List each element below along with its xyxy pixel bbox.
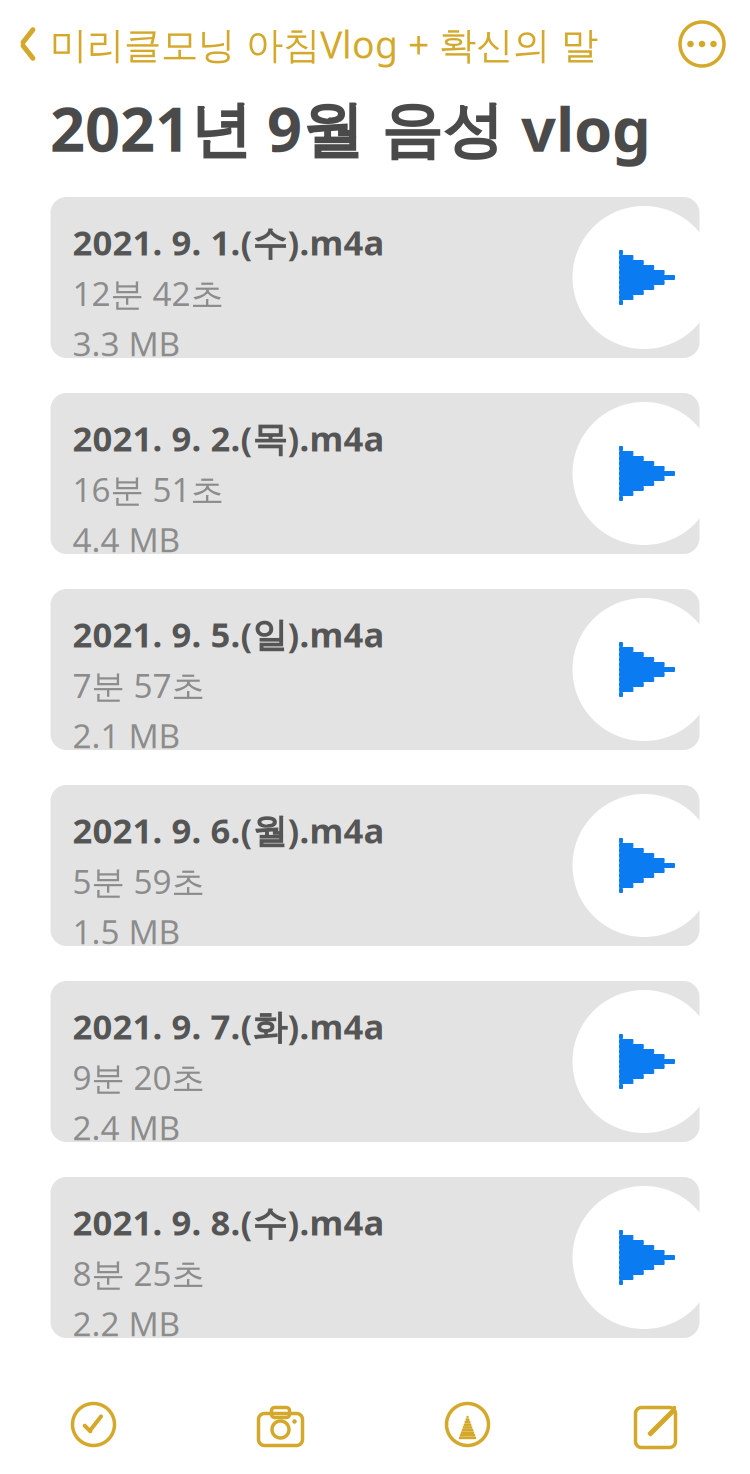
staticText: 2021. 9. 6.(월).m4a: [72, 807, 384, 853]
button[interactable]: 2021. 9. 8.(수).m4a: [50, 1177, 699, 1338]
button[interactable]: 2021. 9. 1.(수).m4a: [50, 197, 699, 358]
staticText: 9분 20초: [72, 1055, 204, 1099]
button[interactable]: 카메라: [187, 1375, 374, 1474]
button[interactable]: 더 보기: [672, 14, 732, 74]
button[interactable]: 2021. 9. 7.(화).m4a: [50, 981, 699, 1142]
staticText: 2.4 MB: [72, 1105, 180, 1150]
button[interactable]: 재생: [572, 402, 715, 545]
staticText: 1.5 MB: [72, 909, 180, 954]
staticText: 2.2 MB: [72, 1301, 180, 1346]
staticText: 2021. 9. 2.(목).m4a: [72, 415, 384, 461]
button[interactable]: 미리클모닝 아침Vlog + 확신의 말: [0, 19, 598, 69]
button[interactable]: 2021. 9. 5.(일).m4a: [50, 589, 699, 750]
button[interactable]: 재생: [572, 206, 715, 349]
staticText: 2021년 9월 음성 vlog: [50, 87, 651, 169]
button[interactable]: 2021. 9. 6.(월).m4a: [50, 785, 699, 946]
staticText: 7분 57초: [72, 663, 204, 707]
button[interactable]: 재생: [572, 794, 715, 937]
button[interactable]: 재생: [572, 990, 715, 1133]
button[interactable]: 2021. 9. 2.(목).m4a: [50, 393, 699, 554]
staticText: 2021. 9. 8.(수).m4a: [72, 1199, 384, 1245]
staticText: 2021. 9. 5.(일).m4a: [72, 611, 384, 657]
staticText: 16분 51초: [72, 467, 223, 511]
button[interactable]: 새로 만들기: [561, 1375, 750, 1474]
staticText: 4.4 MB: [72, 517, 180, 562]
button[interactable]: 재생: [572, 1186, 715, 1329]
staticText: 8분 25초: [72, 1251, 204, 1295]
staticText: 2.1 MB: [72, 713, 180, 758]
staticText: 2021. 9. 7.(화).m4a: [72, 1003, 384, 1049]
button[interactable]: 펜: [374, 1375, 561, 1474]
staticText: 5분 59초: [72, 859, 204, 903]
staticText: 12분 42초: [72, 271, 223, 315]
button[interactable]: 선택: [0, 1375, 187, 1474]
button[interactable]: 재생: [572, 598, 715, 741]
staticText: 3.3 MB: [72, 321, 180, 366]
staticText: 미리클모닝 아침Vlog + 확신의 말: [50, 19, 598, 69]
staticText: 2021. 9. 1.(수).m4a: [72, 219, 384, 265]
